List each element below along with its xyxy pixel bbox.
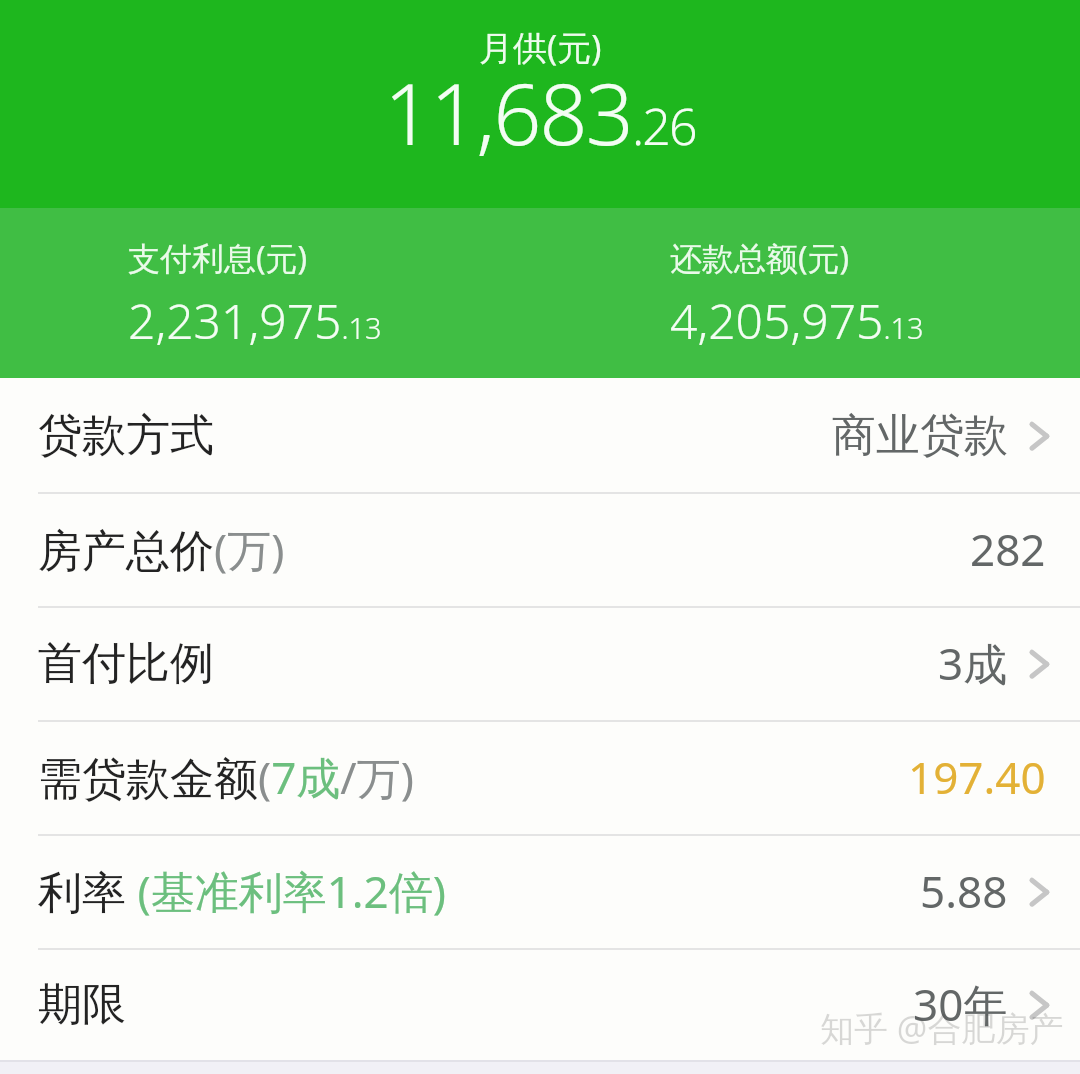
staticText: 还款总额(元) — [670, 236, 850, 280]
staticText: 5.88 — [920, 861, 1008, 921]
button[interactable]: 房产总价 — [0, 492, 1080, 606]
staticText: 11,683.26 — [384, 55, 696, 169]
staticText: 首付比例 — [38, 636, 214, 691]
staticText: 3成 — [938, 633, 1008, 693]
button[interactable]: 利率 — [0, 834, 1080, 948]
button[interactable]: 期限 — [0, 948, 1080, 1060]
other: Open — [1024, 876, 1046, 906]
staticText: 期限 — [38, 977, 126, 1032]
staticText: 月供(元) — [479, 24, 602, 70]
staticText: 30年 — [913, 974, 1008, 1034]
other: Open — [1024, 989, 1046, 1019]
button[interactable]: 贷款方式 — [0, 378, 1080, 492]
button[interactable]: 首付比例 — [0, 606, 1080, 720]
other: Open — [1024, 420, 1046, 450]
staticText: 197.40 — [908, 747, 1046, 807]
staticText: 282 — [970, 519, 1046, 579]
staticText: 知乎 @合肥房产 — [820, 1005, 1080, 1051]
other: Open — [1024, 648, 1046, 678]
staticText: 支付利息(元) — [128, 236, 308, 280]
staticText: 利率 (基准利率1.2倍) — [38, 861, 446, 921]
staticText: 商业贷款 — [832, 408, 1008, 463]
button[interactable]: 需贷款金额 — [0, 720, 1080, 834]
staticText: 房产总价(万) — [38, 519, 285, 579]
staticText: 4,205,975.13 — [670, 288, 924, 353]
staticText: 贷款方式 — [38, 408, 214, 463]
staticText: 需贷款金额(7成/万) — [38, 747, 414, 807]
staticText: 2,231,975.13 — [128, 288, 382, 353]
